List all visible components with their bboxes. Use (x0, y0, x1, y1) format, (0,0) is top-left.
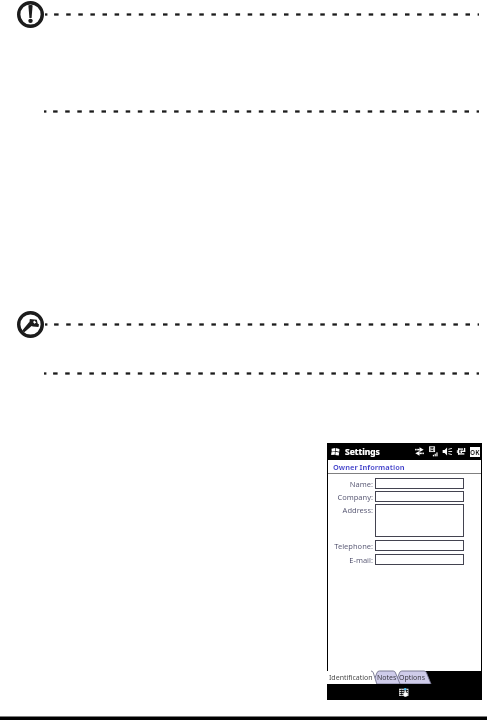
staticText: Address: (342, 505, 373, 515)
staticText: Name: (349, 479, 373, 489)
button[interactable] (375, 540, 464, 551)
staticText: Telephone: (334, 541, 373, 551)
button[interactable]: OK (470, 447, 480, 457)
staticText: Company: (337, 492, 373, 502)
button[interactable] (375, 554, 464, 565)
staticText: Identification (329, 673, 373, 683)
staticText: OK (470, 448, 480, 457)
button[interactable] (375, 478, 464, 489)
staticText: Owner Information (333, 462, 405, 472)
button[interactable]: Options (397, 671, 427, 684)
button[interactable] (375, 491, 464, 502)
staticText: Settings (345, 446, 380, 458)
staticText: E-mail: (349, 555, 373, 565)
button[interactable] (375, 504, 464, 537)
staticText: Notes (377, 673, 397, 683)
button[interactable]: Identification (329, 671, 373, 684)
staticText: Options (399, 673, 426, 683)
button[interactable]: Notes (375, 671, 398, 684)
button[interactable]: Show input panel (399, 688, 410, 697)
